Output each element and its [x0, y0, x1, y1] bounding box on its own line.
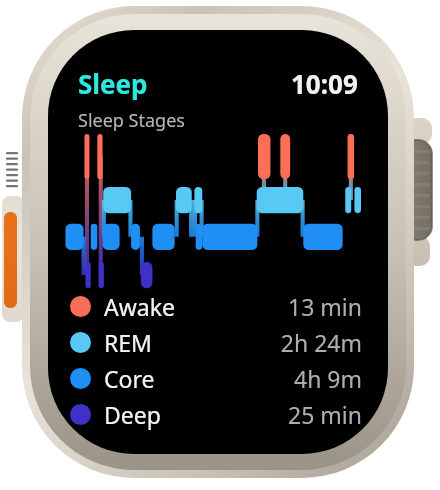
button[interactable]: Core: [48, 360, 388, 396]
staticText: Deep: [104, 399, 161, 430]
staticText: 25 min: [288, 399, 362, 430]
button[interactable]: Sleep stages chart: [54, 140, 382, 290]
staticText: 10:09: [291, 66, 358, 101]
staticText: Awake: [104, 291, 175, 322]
staticText: REM: [104, 327, 152, 358]
staticText: Core: [104, 363, 155, 394]
button[interactable]: Sleep: [78, 66, 148, 101]
staticText: 4h 9m: [293, 363, 362, 394]
staticText: 2h 24m: [280, 327, 362, 358]
button[interactable]: REM: [48, 324, 388, 360]
staticText: 13 min: [288, 291, 362, 322]
button[interactable]: Awake: [48, 288, 388, 324]
button[interactable]: Deep: [48, 396, 388, 432]
staticText: Sleep Stages: [78, 108, 185, 133]
